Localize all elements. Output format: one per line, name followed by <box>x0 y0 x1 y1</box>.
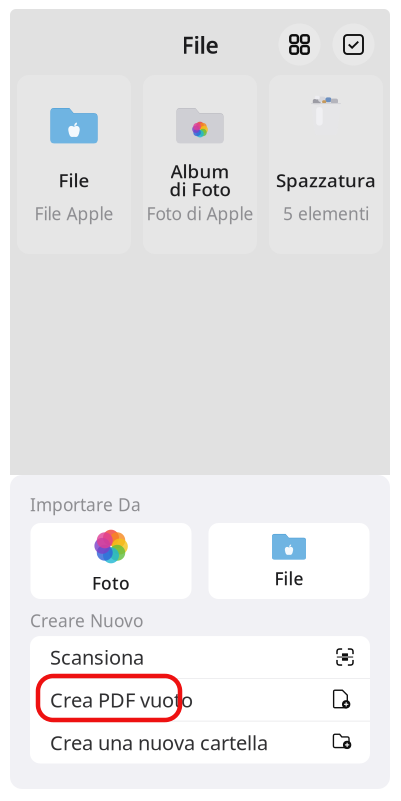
staticText: File <box>274 567 303 590</box>
staticText: Importare Da <box>30 493 141 516</box>
staticText: Foto <box>92 571 130 594</box>
staticText: File <box>181 30 218 60</box>
staticText: Scansiona <box>50 644 144 670</box>
staticText: File Apple <box>34 202 113 225</box>
staticText: Crea PDF vuoto <box>50 686 193 713</box>
button[interactable]: Spazzatura <box>269 75 383 254</box>
button[interactable]: File <box>208 523 369 599</box>
button[interactable]: Grid view <box>278 23 320 65</box>
button[interactable]: Album <box>143 75 257 254</box>
button[interactable]: Select <box>332 23 374 65</box>
staticText: Creare Nuovo <box>30 609 143 632</box>
button[interactable]: Crea una nuova cartella <box>30 721 370 763</box>
staticText: Foto di Apple <box>146 202 253 225</box>
button[interactable]: Foto <box>30 523 191 599</box>
staticText: Album <box>170 159 229 183</box>
staticText: Crea una nuova cartella <box>50 729 268 756</box>
staticText: 5 elementi <box>283 202 369 225</box>
button[interactable]: Crea PDF vuoto <box>30 679 370 721</box>
staticText: Spazzatura <box>276 168 376 192</box>
button[interactable]: Scansiona <box>30 636 370 678</box>
staticText: di Foto <box>169 176 230 201</box>
button[interactable]: File <box>17 75 131 254</box>
staticText: File <box>58 168 89 192</box>
